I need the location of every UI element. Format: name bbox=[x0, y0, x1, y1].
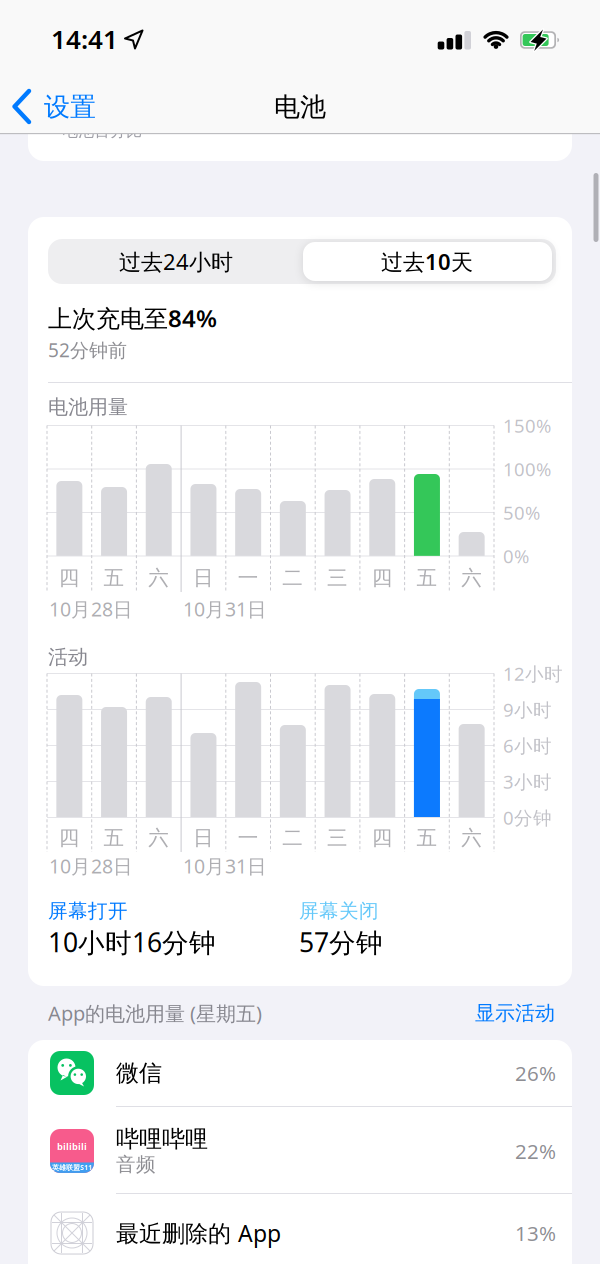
staticText: 22% bbox=[515, 1137, 556, 1165]
staticText: 过去10天 bbox=[381, 247, 473, 276]
staticText: 26% bbox=[515, 1059, 556, 1087]
staticText: 电池用量 bbox=[48, 395, 128, 419]
button[interactable]: 显示活动 bbox=[0, 0, 600, 1264]
staticText: 0% bbox=[503, 544, 529, 568]
staticText: 0分钟 bbox=[503, 805, 552, 830]
staticText: 50% bbox=[503, 500, 540, 525]
staticText: 6小时 bbox=[503, 733, 552, 758]
staticText: 二 bbox=[282, 825, 303, 851]
staticText: 四 bbox=[372, 565, 393, 591]
staticText: 四 bbox=[59, 825, 80, 851]
staticText: 52分钟前 bbox=[48, 337, 127, 363]
staticText: 一 bbox=[238, 825, 259, 851]
staticText: 12小时 bbox=[503, 661, 563, 686]
staticText: 活动 bbox=[48, 645, 88, 669]
staticText: 三 bbox=[327, 825, 348, 851]
staticText: 六 bbox=[461, 825, 482, 851]
staticText: 10月31日 bbox=[183, 853, 267, 879]
button[interactable]: 过去24小时 bbox=[51, 239, 301, 284]
staticText: 五 bbox=[416, 825, 437, 851]
staticText: 3小时 bbox=[503, 769, 552, 794]
staticText: 一 bbox=[238, 565, 259, 591]
staticText: 哔哩哔哩 bbox=[116, 1125, 208, 1153]
staticText: 英雄联盟S11 bbox=[52, 1163, 92, 1172]
staticText: 五 bbox=[104, 825, 125, 851]
staticText: 屏幕打开 bbox=[48, 899, 128, 923]
staticText: 四 bbox=[372, 825, 393, 851]
button[interactable]: 返回设置 bbox=[5, 80, 155, 132]
staticText: 六 bbox=[461, 565, 482, 591]
staticText: 五 bbox=[416, 565, 437, 591]
staticText: 电池 bbox=[274, 91, 326, 123]
staticText: 14:41 bbox=[51, 22, 118, 56]
staticText: 三 bbox=[327, 565, 348, 591]
button[interactable]: 过去10天 bbox=[302, 239, 552, 284]
staticText: 150% bbox=[503, 413, 551, 438]
staticText: 13% bbox=[515, 1219, 556, 1247]
staticText: 屏幕关闭 bbox=[299, 899, 379, 923]
staticText: 上次充电至84% bbox=[48, 302, 217, 334]
staticText: 日 bbox=[193, 825, 214, 851]
staticText: 五 bbox=[104, 565, 125, 591]
staticText: 日 bbox=[193, 565, 214, 591]
staticText: 四 bbox=[59, 565, 80, 591]
staticText: bilibili bbox=[57, 1140, 87, 1153]
staticText: App的电池用量 (星期五) bbox=[48, 1000, 262, 1026]
staticText: 100% bbox=[503, 457, 551, 481]
staticText: 显示活动 bbox=[475, 1001, 555, 1025]
staticText: 57分钟 bbox=[299, 924, 383, 960]
staticText: 9小时 bbox=[503, 697, 552, 722]
staticText: 音频 bbox=[116, 1152, 156, 1176]
staticText: 微信 bbox=[116, 1059, 162, 1087]
staticText: 最近删除的 App bbox=[116, 1218, 281, 1248]
staticText: 10月28日 bbox=[49, 853, 133, 879]
staticText: 六 bbox=[148, 565, 169, 591]
staticText: 10月28日 bbox=[49, 596, 133, 622]
staticText: 10月31日 bbox=[183, 596, 267, 622]
staticText: 10小时16分钟 bbox=[48, 924, 216, 960]
staticText: 二 bbox=[282, 565, 303, 591]
staticText: 设置 bbox=[44, 91, 96, 123]
staticText: 过去24小时 bbox=[119, 247, 233, 276]
staticText: 六 bbox=[148, 825, 169, 851]
staticText: 电池百分比 bbox=[62, 121, 142, 141]
